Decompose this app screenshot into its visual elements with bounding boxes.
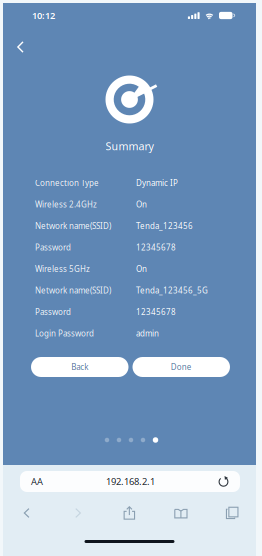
- button[interactable]: Done: [132, 357, 230, 377]
- button[interactable]: Share: [104, 503, 155, 523]
- staticText: AA: [31, 475, 43, 488]
- staticText: Connection Type: [35, 178, 99, 188]
- button[interactable]: Tabs: [207, 503, 258, 523]
- staticText: Password: [35, 307, 71, 317]
- staticText: Login Password: [35, 328, 94, 339]
- staticText: admin: [136, 328, 159, 339]
- staticText: Tenda_123456_5G: [136, 285, 208, 296]
- button[interactable]: Bookmarks: [155, 503, 207, 523]
- staticText: Wireless 2.4GHz: [35, 199, 97, 210]
- staticText: 192.168.2.1: [106, 475, 155, 488]
- staticText: Done: [171, 362, 192, 372]
- staticText: 12345678: [136, 307, 176, 317]
- staticText: On: [136, 199, 147, 210]
- staticText: Password: [35, 242, 71, 253]
- staticText: Network name(SSID): [35, 285, 111, 296]
- staticText: Back: [71, 362, 88, 372]
- staticText: 10:12: [32, 9, 55, 22]
- button[interactable]: Back: [1, 503, 52, 523]
- button[interactable]: Back: [9, 35, 32, 59]
- staticText: 12345678: [136, 242, 176, 253]
- staticText: Wireless 5GHz: [35, 264, 90, 274]
- button[interactable]: Back: [31, 357, 128, 377]
- staticText: On: [136, 264, 147, 274]
- button[interactable]: AA: [20, 471, 240, 492]
- staticText: Summary: [105, 139, 153, 153]
- staticText: Network name(SSID): [35, 221, 111, 231]
- staticText: Dynamic IP: [136, 178, 178, 188]
- staticText: Tenda_123456: [136, 221, 193, 231]
